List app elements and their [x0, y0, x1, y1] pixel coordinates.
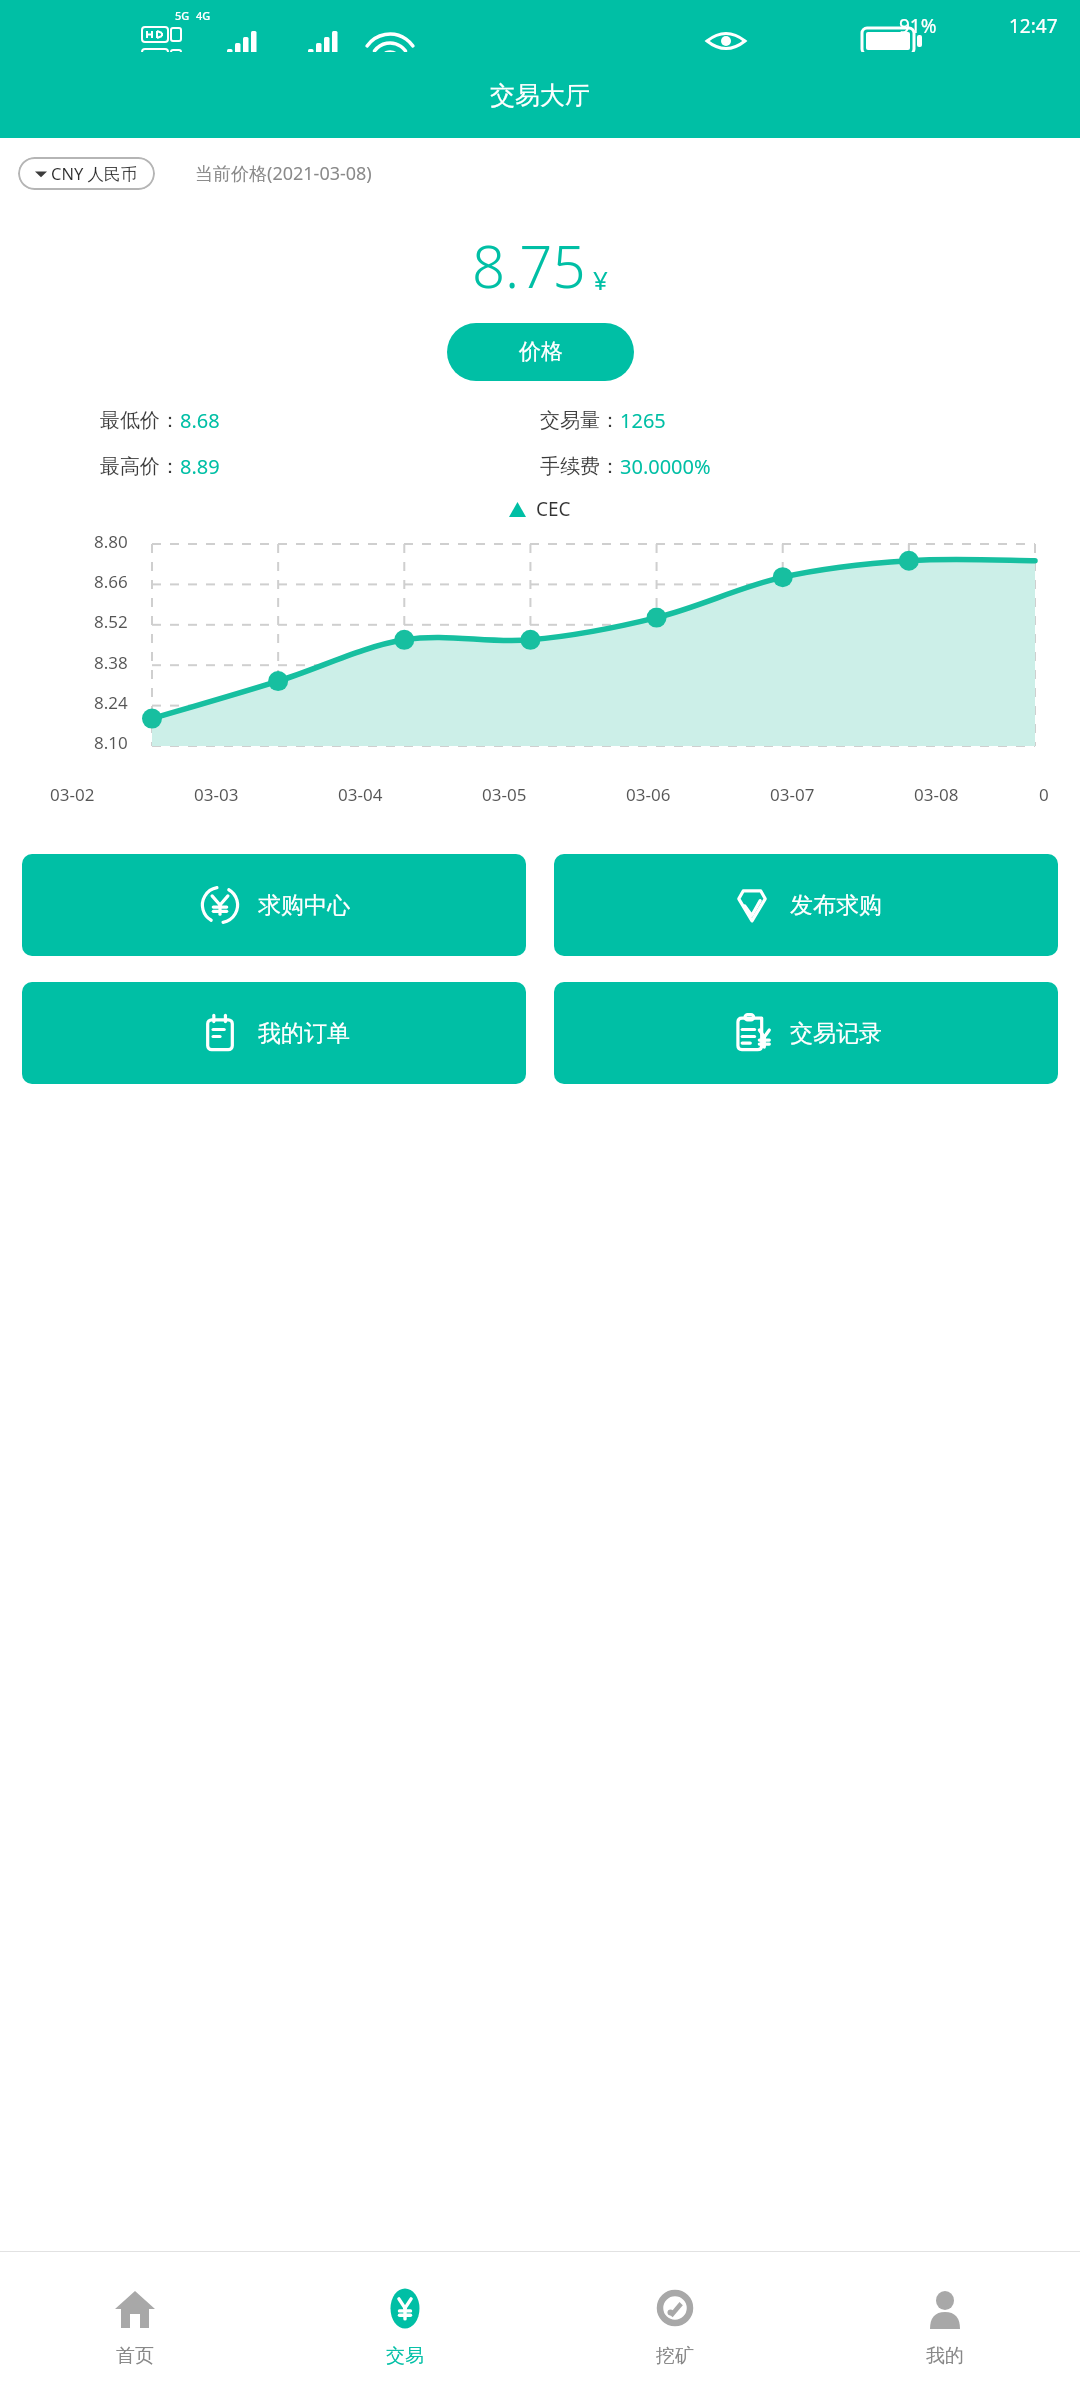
staticText: CNY 人民币 — [51, 162, 138, 185]
staticText: 我的 — [926, 2344, 964, 2368]
staticText: ¥ — [593, 262, 608, 297]
staticText: 03-06 — [626, 783, 671, 806]
staticText: 我的订单 — [258, 1019, 350, 1048]
staticText: 挖矿 — [656, 2344, 694, 2368]
staticText: 8.24 — [94, 691, 128, 714]
staticText: 8.89 — [180, 453, 220, 480]
staticText: 5G — [175, 8, 190, 23]
staticText: 0 — [1039, 783, 1049, 806]
button[interactable]: 发布求购 — [554, 854, 1058, 956]
staticText: 最高价： — [100, 454, 180, 479]
button[interactable]: 我的订单 — [22, 982, 526, 1084]
staticText: 8.75 — [472, 226, 586, 305]
staticText: 价格 — [519, 338, 563, 366]
button[interactable]: 挖矿 — [540, 2252, 810, 2400]
staticText: 8.38 — [94, 651, 128, 674]
staticText: 交易 — [386, 2344, 424, 2368]
staticText: CEC — [536, 496, 571, 522]
staticText: 03-05 — [482, 783, 527, 806]
staticText: 发布求购 — [790, 891, 882, 920]
staticText: 30.0000% — [620, 453, 711, 480]
staticText: 交易大厅 — [490, 80, 590, 111]
button[interactable]: 首页 — [0, 2252, 270, 2400]
button[interactable]: CNY 人民币 — [18, 157, 155, 190]
staticText: 当前价格(2021-03-08) — [195, 161, 372, 186]
staticText: 4G — [196, 8, 211, 23]
button[interactable]: 我的 — [810, 2252, 1080, 2400]
staticText: 8.66 — [94, 570, 128, 593]
staticText: 91% — [899, 13, 937, 39]
staticText: 03-03 — [194, 783, 239, 806]
staticText: 8.68 — [180, 407, 220, 434]
staticText: 首页 — [116, 2344, 154, 2368]
staticText: 03-02 — [50, 783, 95, 806]
staticText: 手续费： — [540, 454, 620, 479]
staticText: 交易量： — [540, 408, 620, 433]
staticText: 最低价： — [100, 408, 180, 433]
button[interactable]: 交易 — [270, 2252, 540, 2400]
staticText: 03-04 — [338, 783, 383, 806]
staticText: 03-08 — [914, 783, 959, 806]
button[interactable]: 价格 — [447, 323, 634, 381]
staticText: 求购中心 — [258, 891, 350, 920]
staticText: 8.80 — [94, 530, 128, 553]
staticText: 1265 — [620, 407, 666, 434]
staticText: 8.10 — [94, 731, 128, 754]
button[interactable]: 求购中心 — [22, 854, 526, 956]
staticText: 交易记录 — [790, 1019, 882, 1048]
staticText: 12:47 — [1009, 13, 1058, 39]
button[interactable]: 交易记录 — [554, 982, 1058, 1084]
staticText: 8.52 — [94, 610, 128, 633]
staticText: 03-07 — [770, 783, 815, 806]
